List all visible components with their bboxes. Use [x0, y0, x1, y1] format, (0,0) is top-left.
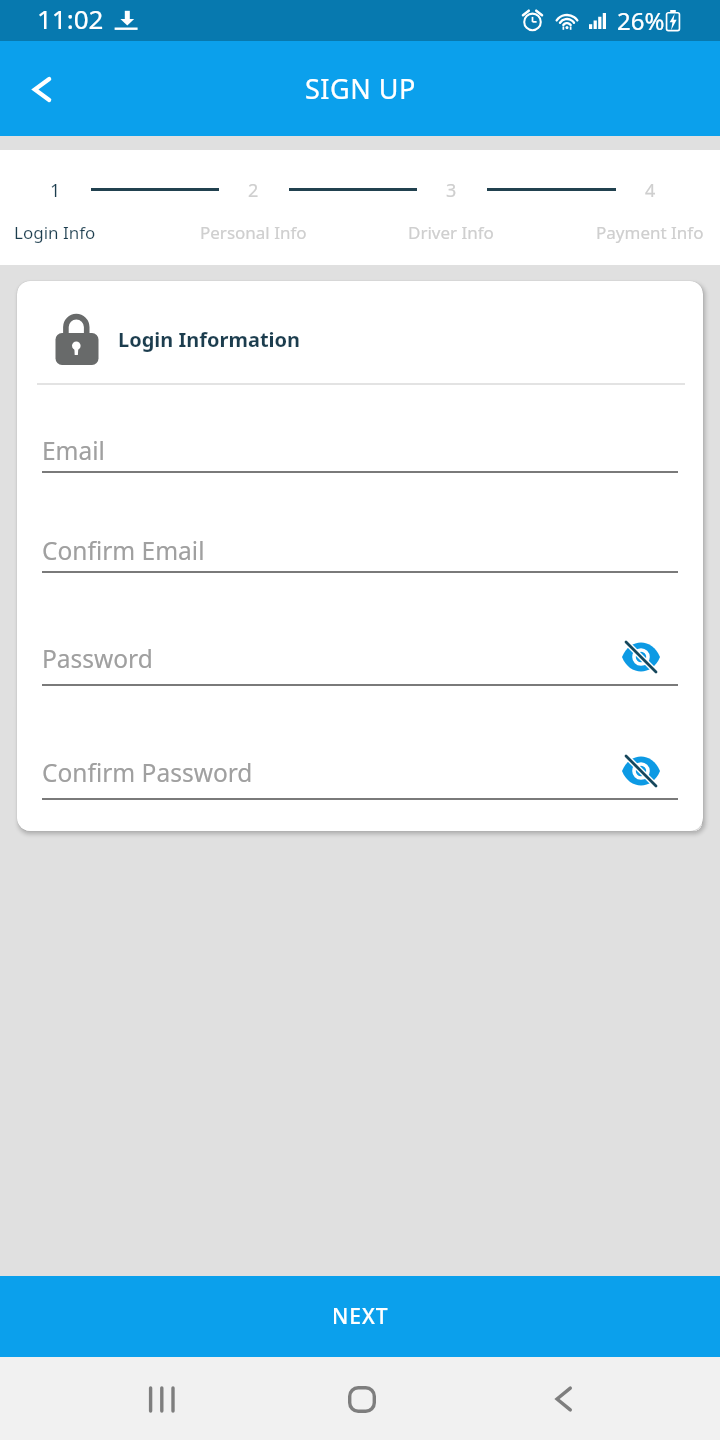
- button[interactable]: 1: [15, 173, 95, 207]
- staticText: Confirm Email: [42, 534, 205, 567]
- button[interactable]: 4: [610, 173, 690, 207]
- staticText: 2: [248, 178, 259, 203]
- staticText: SIGN UP: [305, 70, 416, 107]
- staticText: Password: [42, 642, 153, 675]
- button[interactable]: Show password: [619, 749, 663, 793]
- staticText: 1: [50, 178, 61, 203]
- button[interactable]: Home: [322, 1359, 402, 1439]
- button[interactable]: Show password: [619, 635, 663, 679]
- staticText: 11:02: [37, 1, 104, 36]
- button[interactable]: 2: [213, 173, 293, 207]
- staticText: 3: [446, 178, 457, 203]
- button[interactable]: 3: [411, 173, 491, 207]
- button[interactable]: Back: [523, 1359, 603, 1439]
- staticText: Personal Info: [200, 221, 307, 244]
- staticText: 26%: [617, 4, 665, 37]
- staticText: Login Information: [118, 326, 301, 353]
- button[interactable]: Recent apps: [122, 1359, 202, 1439]
- staticText: 4: [645, 178, 656, 203]
- staticText: Payment Info: [596, 221, 704, 244]
- staticText: Confirm Password: [42, 756, 253, 789]
- button[interactable]: NEXT: [0, 1276, 720, 1357]
- staticText: NEXT: [332, 1302, 389, 1331]
- staticText: Driver Info: [408, 221, 494, 244]
- staticText: Login Info: [14, 221, 96, 244]
- button[interactable]: Back: [12, 59, 72, 119]
- staticText: Email: [42, 434, 105, 467]
